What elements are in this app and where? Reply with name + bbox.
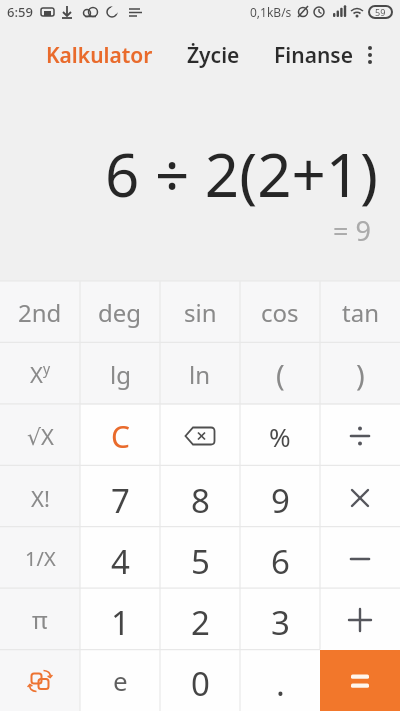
button[interactable]: 1/X: [0, 528, 80, 589]
button[interactable]: [320, 650, 400, 711]
button[interactable]: tan: [320, 281, 400, 343]
staticText: sin: [184, 296, 217, 329]
button[interactable]: Xy: [0, 343, 80, 405]
staticText: 0: [191, 661, 210, 706]
staticText: 3: [271, 600, 290, 645]
button[interactable]: 3: [240, 589, 320, 650]
staticText: 59: [375, 6, 386, 18]
button[interactable]: ): [320, 343, 400, 405]
staticText: π: [32, 603, 48, 636]
staticText: tan: [342, 296, 379, 329]
button[interactable]: 9: [240, 467, 320, 528]
staticText: ln: [189, 358, 211, 391]
staticText: 8: [191, 478, 210, 523]
staticText: 1/X: [25, 545, 56, 572]
button[interactable]: 5: [160, 528, 240, 589]
staticText: 9: [271, 478, 290, 523]
staticText: = 9: [333, 212, 371, 249]
staticText: 2: [191, 600, 210, 645]
staticText: Finanse: [274, 41, 353, 70]
button[interactable]: %: [240, 405, 320, 467]
button[interactable]: √X: [0, 405, 80, 467]
staticText: C: [111, 416, 130, 457]
button[interactable]: Życie: [187, 41, 240, 70]
button[interactable]: π: [0, 589, 80, 650]
staticText: 6:59: [7, 3, 33, 21]
staticText: .: [276, 661, 285, 706]
button[interactable]: deg: [80, 281, 160, 343]
staticText: Życie: [187, 41, 240, 70]
button[interactable]: 1: [80, 589, 160, 650]
staticText: X!: [31, 483, 50, 513]
staticText: ): [356, 355, 365, 394]
button[interactable]: [320, 589, 400, 650]
staticText: 1: [111, 600, 130, 645]
button[interactable]: (: [240, 343, 320, 405]
button[interactable]: e: [80, 650, 160, 711]
staticText: √X: [27, 421, 54, 451]
button[interactable]: [0, 650, 80, 711]
button[interactable]: ln: [160, 343, 240, 405]
button[interactable]: [320, 467, 400, 528]
button[interactable]: [355, 40, 385, 70]
button[interactable]: 4: [80, 528, 160, 589]
button[interactable]: 8: [160, 467, 240, 528]
button[interactable]: 2: [160, 589, 240, 650]
button[interactable]: 7: [80, 467, 160, 528]
button[interactable]: X!: [0, 467, 80, 528]
button[interactable]: 0: [160, 650, 240, 711]
button[interactable]: [320, 405, 400, 467]
staticText: 5: [191, 539, 210, 584]
button[interactable]: .: [240, 650, 320, 711]
staticText: cos: [261, 296, 299, 329]
staticText: 6 ÷ 2(2+1): [105, 133, 379, 215]
staticText: deg: [98, 296, 142, 329]
button[interactable]: cos: [240, 281, 320, 343]
button[interactable]: sin: [160, 281, 240, 343]
staticText: 0,1kB/s: [250, 4, 292, 20]
staticText: (: [276, 355, 285, 394]
button[interactable]: 6: [240, 528, 320, 589]
staticText: 6: [271, 539, 290, 584]
staticText: 2nd: [18, 296, 62, 329]
button[interactable]: C: [80, 405, 160, 467]
button[interactable]: Finanse: [274, 41, 353, 70]
staticText: e: [113, 663, 128, 698]
staticText: %: [269, 419, 291, 454]
staticText: 7: [111, 478, 130, 523]
button[interactable]: [320, 528, 400, 589]
button[interactable]: lg: [80, 343, 160, 405]
button[interactable]: [160, 405, 240, 467]
staticText: Xy: [30, 359, 51, 389]
staticText: lg: [110, 358, 131, 391]
staticText: Kalkulator: [46, 41, 153, 70]
button[interactable]: 2nd: [0, 281, 80, 343]
button[interactable]: Kalkulator: [46, 41, 153, 70]
staticText: 4: [111, 539, 130, 584]
